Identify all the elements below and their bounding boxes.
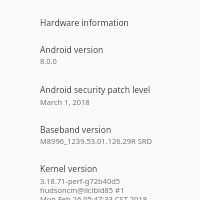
staticText: 3.18.71-perf-g72b40d5 hudsoncm@ilclbld85… — [40, 176, 147, 200]
staticText: 8.0.0 — [40, 56, 57, 66]
button[interactable]: Kernel version — [0, 156, 200, 200]
staticText: Android version — [40, 44, 104, 56]
staticText: Kernel version — [40, 163, 98, 175]
staticText: Hardware information — [40, 17, 129, 29]
staticText: M8996_1239.53.01.126.29R SRD — [40, 136, 152, 146]
button[interactable]: Android security patch level — [0, 76, 200, 116]
staticText: Android security patch level — [40, 84, 151, 96]
staticText: March 1, 2018 — [40, 97, 90, 107]
button[interactable]: Android version — [0, 36, 200, 76]
button[interactable]: Baseband version — [0, 116, 200, 156]
staticText: Baseband version — [40, 124, 112, 136]
